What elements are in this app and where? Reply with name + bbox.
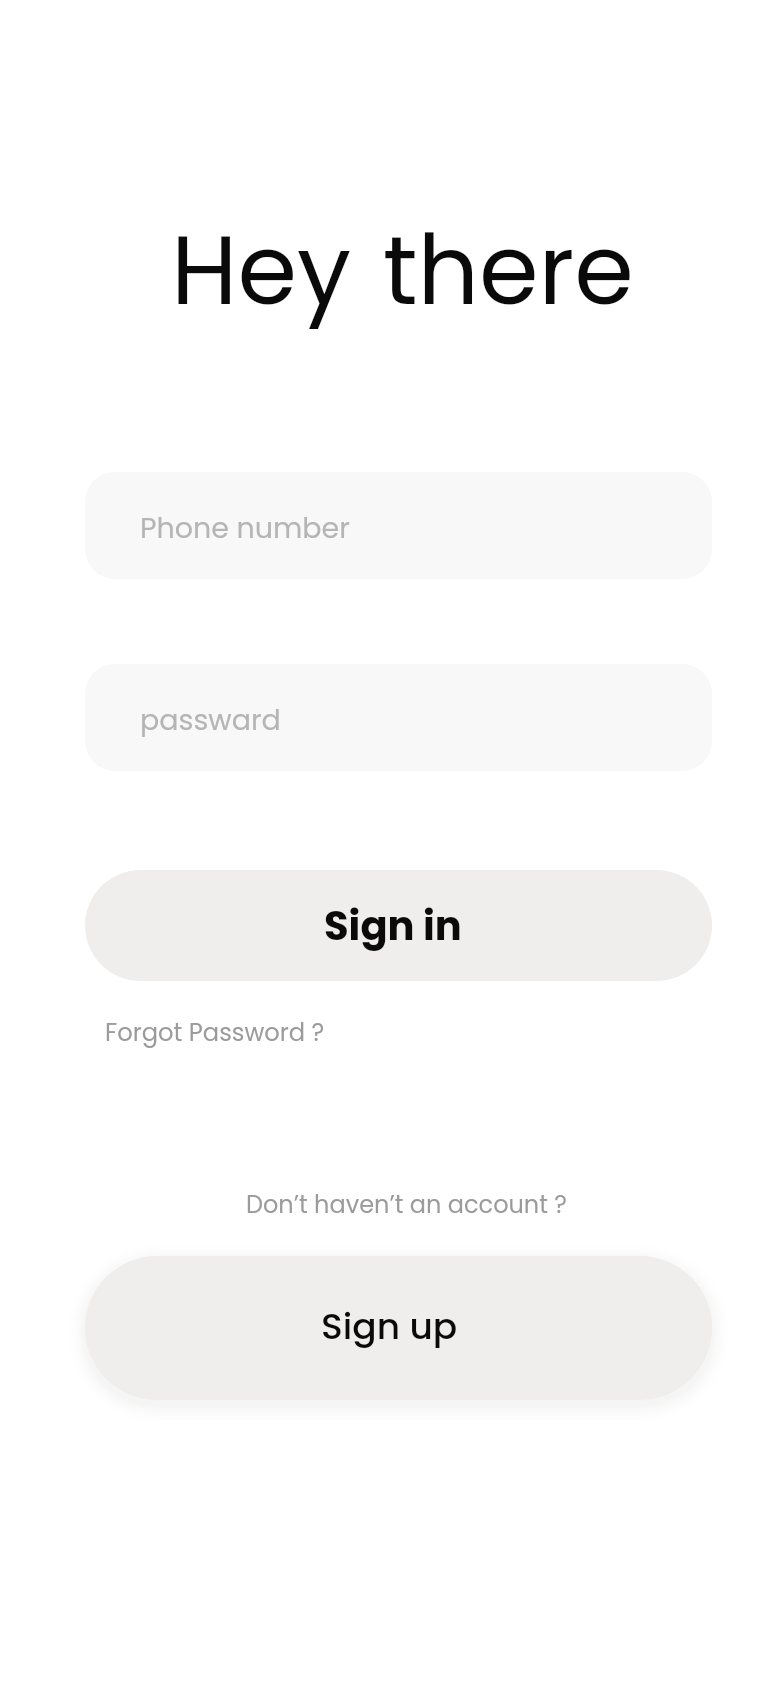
staticText: Forgot Password ? (105, 1016, 325, 1050)
button[interactable]: passward (85, 664, 712, 771)
staticText: Don’t haven’t an account ? (246, 1188, 567, 1222)
staticText: Sign in (324, 898, 462, 954)
button[interactable]: Forgot Password ? (105, 1016, 325, 1050)
button[interactable]: Phone number (85, 472, 712, 579)
staticText: Phone number (140, 508, 350, 548)
button[interactable]: Sign up (85, 1256, 712, 1400)
staticText: Sign up (321, 1301, 458, 1351)
button[interactable]: Sign in (85, 870, 712, 981)
staticText: passward (140, 700, 281, 740)
staticText: Hey there (171, 203, 634, 337)
